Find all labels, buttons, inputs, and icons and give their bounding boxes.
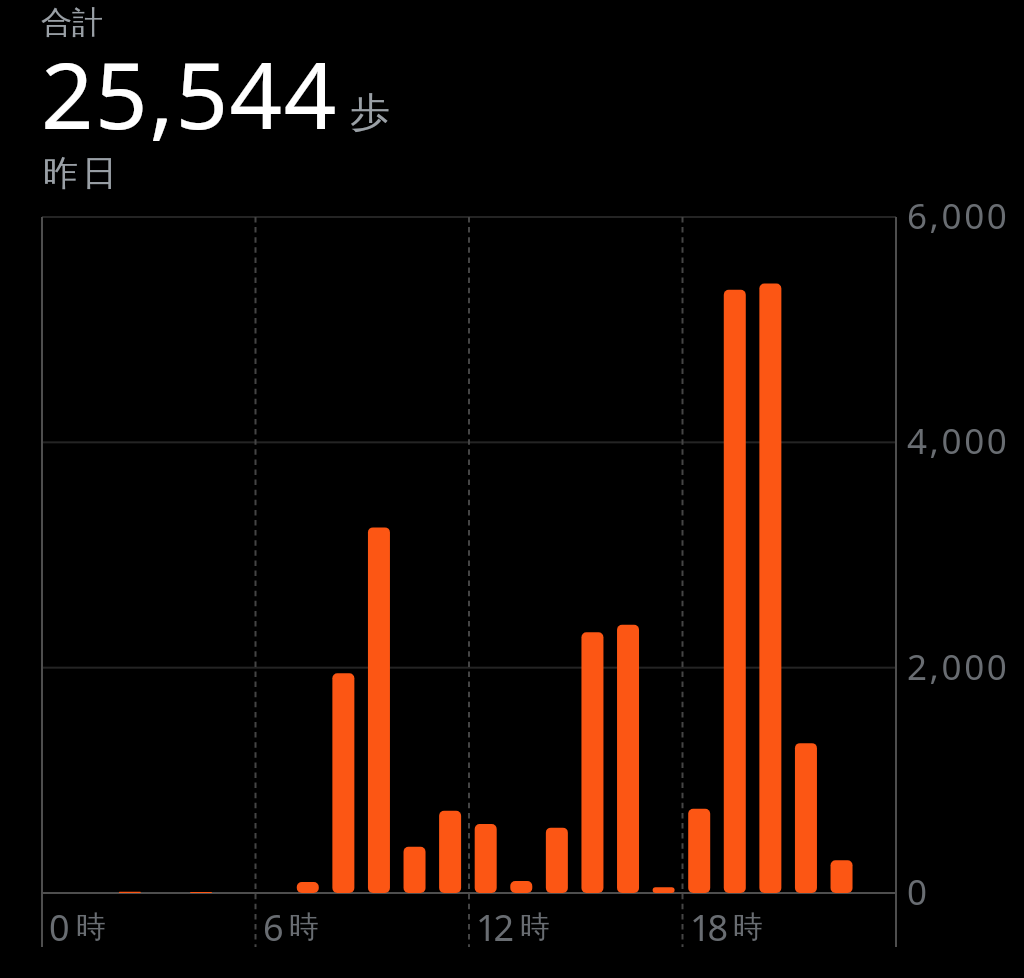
button[interactable]: 21時 1330歩 bbox=[789, 217, 825, 893]
button[interactable]: 10時 410歩 bbox=[398, 217, 434, 893]
staticText: 12 bbox=[476, 903, 512, 952]
button[interactable] bbox=[30, 0, 410, 200]
staticText: 歩 bbox=[350, 87, 390, 137]
staticText: 6 bbox=[263, 903, 284, 952]
button[interactable]: 17時 52歩 bbox=[647, 217, 683, 893]
button[interactable]: 14時 580歩 bbox=[540, 217, 576, 893]
button[interactable]: 13時 106歩 bbox=[505, 217, 541, 893]
staticText: 18 bbox=[690, 903, 726, 952]
button[interactable]: 12時 612歩 bbox=[469, 217, 505, 893]
button[interactable]: 22時 290歩 bbox=[825, 217, 861, 893]
staticText: 時 bbox=[733, 908, 763, 946]
staticText: 昨日 bbox=[41, 151, 119, 195]
staticText: 0 bbox=[907, 868, 930, 916]
button[interactable]: 11時 730歩 bbox=[433, 217, 469, 893]
staticText: 4,000 bbox=[907, 417, 1010, 465]
button[interactable]: 15時 2315歩 bbox=[576, 217, 612, 893]
button[interactable]: 16時 2380歩 bbox=[611, 217, 647, 893]
staticText: 6,000 bbox=[907, 192, 1010, 240]
button[interactable]: 9時 3245歩 bbox=[362, 217, 398, 893]
button[interactable]: 18時 748歩 bbox=[683, 217, 719, 893]
button[interactable]: 19時 5355歩 bbox=[718, 217, 754, 893]
staticText: 時 bbox=[289, 908, 319, 946]
button[interactable]: 4時 8歩 bbox=[184, 217, 220, 893]
button[interactable]: 20時 5410歩 bbox=[754, 217, 790, 893]
button[interactable]: 2時 12歩 bbox=[113, 217, 149, 893]
staticText: 時 bbox=[76, 908, 106, 946]
staticText: 2,000 bbox=[907, 643, 1010, 691]
staticText: 0 bbox=[49, 903, 70, 952]
staticText: 時 bbox=[520, 908, 550, 946]
button[interactable]: 8時 1950歩 bbox=[327, 217, 363, 893]
button[interactable]: 7時 98歩 bbox=[291, 217, 327, 893]
staticText: 25,544 bbox=[41, 31, 338, 156]
staticText: 合計 bbox=[41, 3, 103, 42]
